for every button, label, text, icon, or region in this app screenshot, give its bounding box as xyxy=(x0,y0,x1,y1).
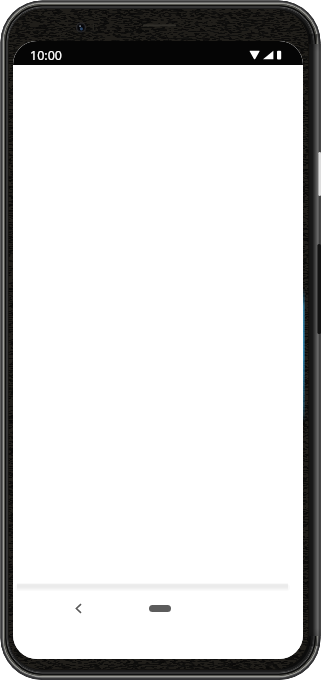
button[interactable]: Home xyxy=(137,598,183,618)
button[interactable]: Back xyxy=(68,598,88,618)
staticText: 10:00 xyxy=(30,47,62,64)
